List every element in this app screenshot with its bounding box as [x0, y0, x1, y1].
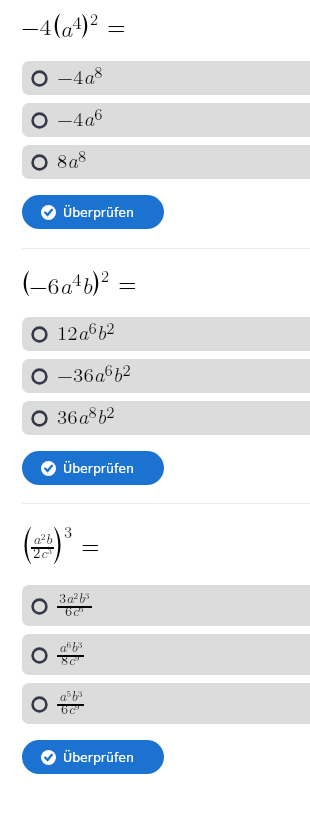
staticText: −6a4b	[29, 266, 93, 300]
staticText: 6c6	[65, 601, 84, 620]
staticText: 36a8b2	[57, 401, 115, 430]
staticText: Überprüfen	[63, 461, 134, 476]
staticText: −4a8	[57, 61, 103, 90]
staticText: 3	[64, 521, 73, 543]
staticText: a5b3	[59, 686, 83, 705]
button[interactable]: a6b3	[22, 634, 310, 675]
staticText: a2b	[33, 528, 53, 548]
button[interactable]: a5b3	[22, 683, 310, 724]
button[interactable]: Überprüfen	[22, 740, 164, 774]
button[interactable]: 36a8b2	[22, 401, 310, 435]
staticText: 6c9	[61, 699, 80, 718]
button[interactable]: 3a2b3	[22, 585, 310, 626]
staticText: Überprüfen	[63, 750, 134, 765]
staticText: −36a6b2	[57, 359, 131, 388]
staticText: =	[73, 529, 100, 561]
staticText: 8a8	[57, 145, 87, 174]
staticText: a4	[60, 9, 82, 43]
button[interactable]: −36a6b2	[22, 359, 310, 393]
staticText: −4	[21, 10, 52, 42]
button[interactable]: 8a8	[22, 145, 310, 179]
staticText: 2	[101, 265, 110, 287]
staticText: 2	[90, 8, 99, 30]
button[interactable]: Überprüfen	[22, 195, 164, 229]
staticText: 3a2b3	[59, 588, 90, 607]
button[interactable]: Überprüfen	[22, 451, 164, 485]
staticText: 2c3	[33, 542, 53, 562]
staticText: 12a6b2	[57, 317, 115, 346]
staticText: −4a6	[57, 103, 103, 132]
staticText: a6b3	[59, 637, 83, 656]
staticText: 8c9	[61, 650, 80, 669]
staticText: =	[110, 267, 137, 299]
button[interactable]: −4a6	[22, 103, 310, 137]
button[interactable]: 12a6b2	[22, 317, 310, 351]
staticText: Überprüfen	[63, 205, 134, 220]
staticText: =	[99, 10, 126, 42]
button[interactable]: −4a8	[22, 61, 310, 95]
